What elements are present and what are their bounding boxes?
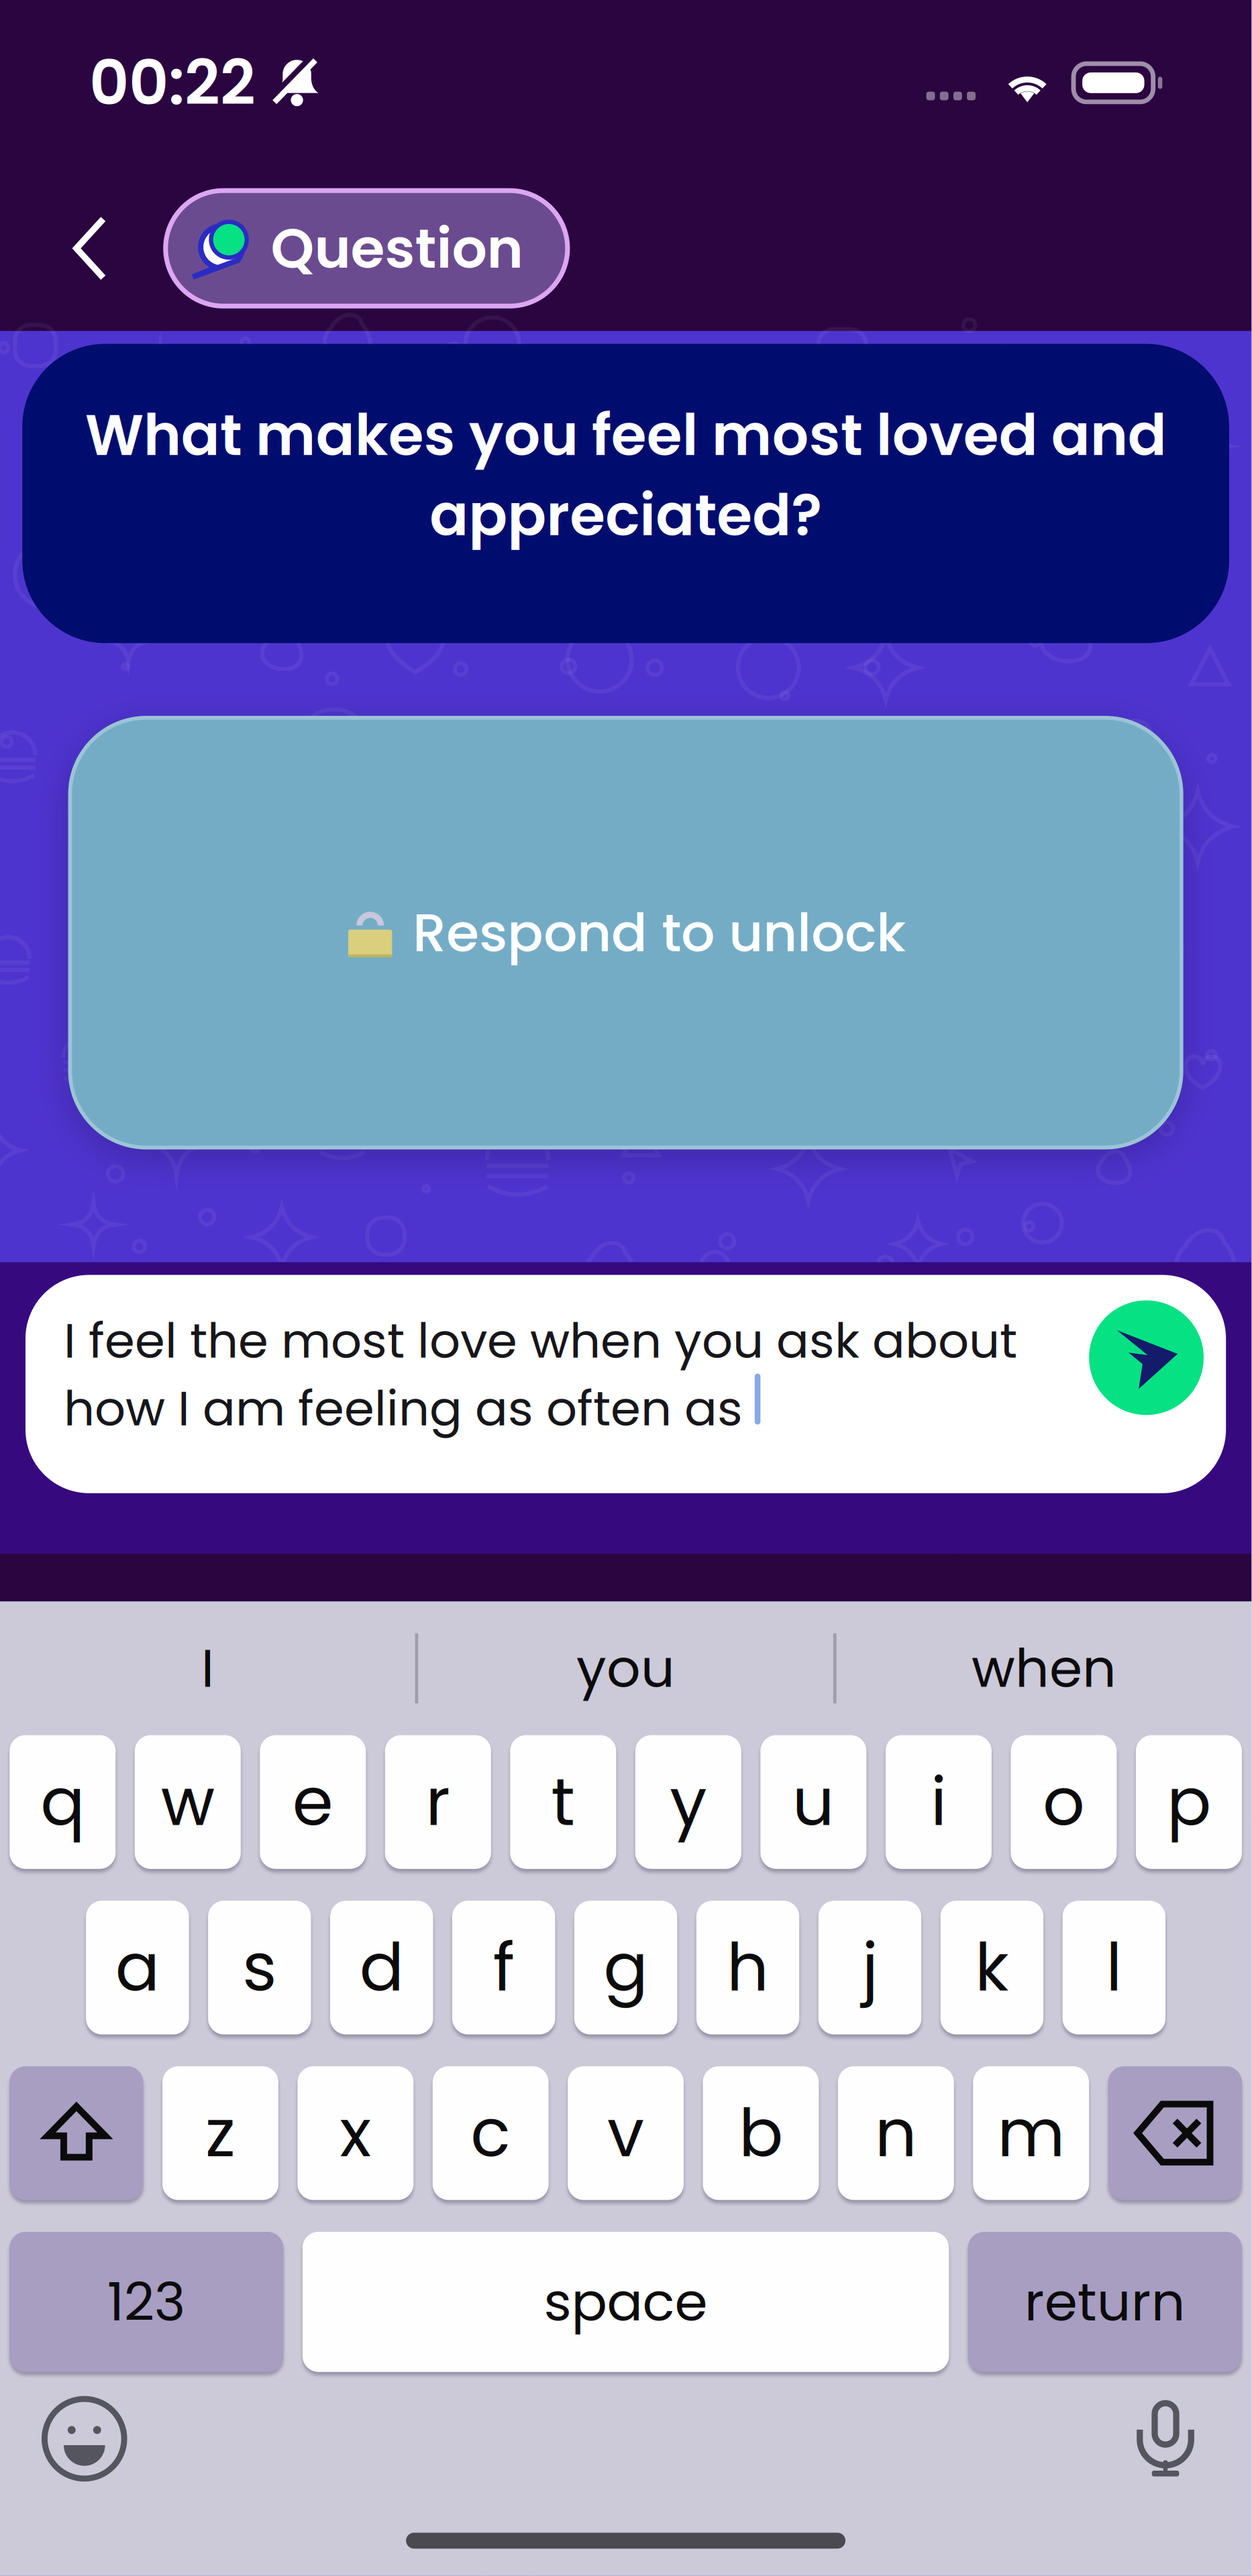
button[interactable]: z — [162, 2066, 278, 2200]
button[interactable]: c — [433, 2066, 549, 2200]
button[interactable]: 123 — [10, 2232, 283, 2372]
staticText: b — [739, 2087, 783, 2179]
button[interactable]: l — [1063, 1901, 1166, 2034]
button[interactable]: Dictate — [1124, 2397, 1207, 2480]
staticText: i — [931, 1756, 947, 1848]
staticText: h — [727, 1922, 769, 2014]
staticText: when — [971, 1631, 1116, 1705]
button[interactable]: Back — [32, 178, 147, 318]
staticText: What makes you feel most loved and appre… — [85, 395, 1167, 555]
staticText: t — [551, 1756, 575, 1848]
staticText: g — [604, 1922, 648, 2014]
staticText: x — [340, 2087, 371, 2179]
staticText: f — [493, 1922, 514, 2014]
staticText: Respond to unlock — [413, 895, 906, 970]
staticText: l — [1106, 1922, 1122, 2014]
staticText: w — [161, 1756, 215, 1848]
staticText: I feel the most love when you ask about … — [64, 1307, 1017, 1442]
staticText: d — [359, 1922, 404, 2014]
staticText: you — [576, 1631, 675, 1705]
button[interactable]: space — [303, 2232, 949, 2372]
staticText: 123 — [107, 2265, 186, 2339]
staticText: e — [292, 1756, 333, 1848]
staticText: s — [242, 1922, 277, 2014]
staticText: p — [1167, 1756, 1211, 1848]
button[interactable]: u — [760, 1735, 866, 1869]
button[interactable]: Question — [166, 191, 568, 306]
button[interactable]: f — [452, 1901, 555, 2034]
staticText: r — [426, 1756, 450, 1848]
button[interactable]: o — [1011, 1735, 1117, 1869]
button[interactable]: a — [86, 1901, 189, 2034]
staticText: z — [205, 2087, 236, 2179]
staticText: 00:22 — [89, 40, 256, 126]
button[interactable]: e — [260, 1735, 366, 1869]
button[interactable]: t — [510, 1735, 616, 1869]
button[interactable]: b — [703, 2066, 819, 2200]
button[interactable]: g — [574, 1901, 677, 2034]
staticText: y — [670, 1756, 707, 1848]
button[interactable]: n — [838, 2066, 954, 2200]
button[interactable]: s — [208, 1901, 311, 2034]
button[interactable]: h — [696, 1901, 799, 2034]
staticText: c — [470, 2087, 511, 2179]
button[interactable]: Delete — [1108, 2066, 1242, 2200]
staticText: k — [975, 1922, 1009, 2014]
button[interactable]: w — [135, 1735, 241, 1869]
staticText: v — [607, 2087, 644, 2179]
staticText: space — [544, 2265, 708, 2339]
button[interactable]: r — [385, 1735, 491, 1869]
staticText: I — [201, 1631, 214, 1705]
staticText: n — [875, 2087, 917, 2179]
button[interactable]: Send — [1089, 1300, 1204, 1415]
button[interactable]: you — [418, 1598, 833, 1738]
staticText: q — [40, 1756, 85, 1848]
button[interactable]: I — [0, 1598, 415, 1738]
staticText: return — [1024, 2265, 1186, 2339]
button[interactable]: p — [1136, 1735, 1242, 1869]
staticText: j — [862, 1922, 878, 2014]
button[interactable]: Respond to unlock — [0, 718, 1251, 1148]
button[interactable]: Shift — [10, 2066, 143, 2200]
button[interactable]: q — [10, 1735, 116, 1869]
button[interactable]: when — [836, 1598, 1251, 1738]
staticText: a — [115, 1922, 160, 2014]
button[interactable]: m — [973, 2066, 1089, 2200]
staticText: u — [792, 1756, 835, 1848]
button[interactable]: v — [568, 2066, 684, 2200]
button[interactable]: Emoji keyboard — [45, 2399, 124, 2479]
button[interactable]: d — [330, 1901, 433, 2034]
button[interactable]: j — [818, 1901, 921, 2034]
button[interactable]: i — [886, 1735, 992, 1869]
button[interactable]: k — [940, 1901, 1043, 2034]
button[interactable]: x — [298, 2066, 414, 2200]
staticText: Question — [271, 210, 523, 287]
button[interactable]: return — [968, 2232, 1242, 2372]
button[interactable]: y — [635, 1735, 741, 1869]
staticText: o — [1043, 1756, 1085, 1848]
staticText: m — [997, 2087, 1065, 2179]
